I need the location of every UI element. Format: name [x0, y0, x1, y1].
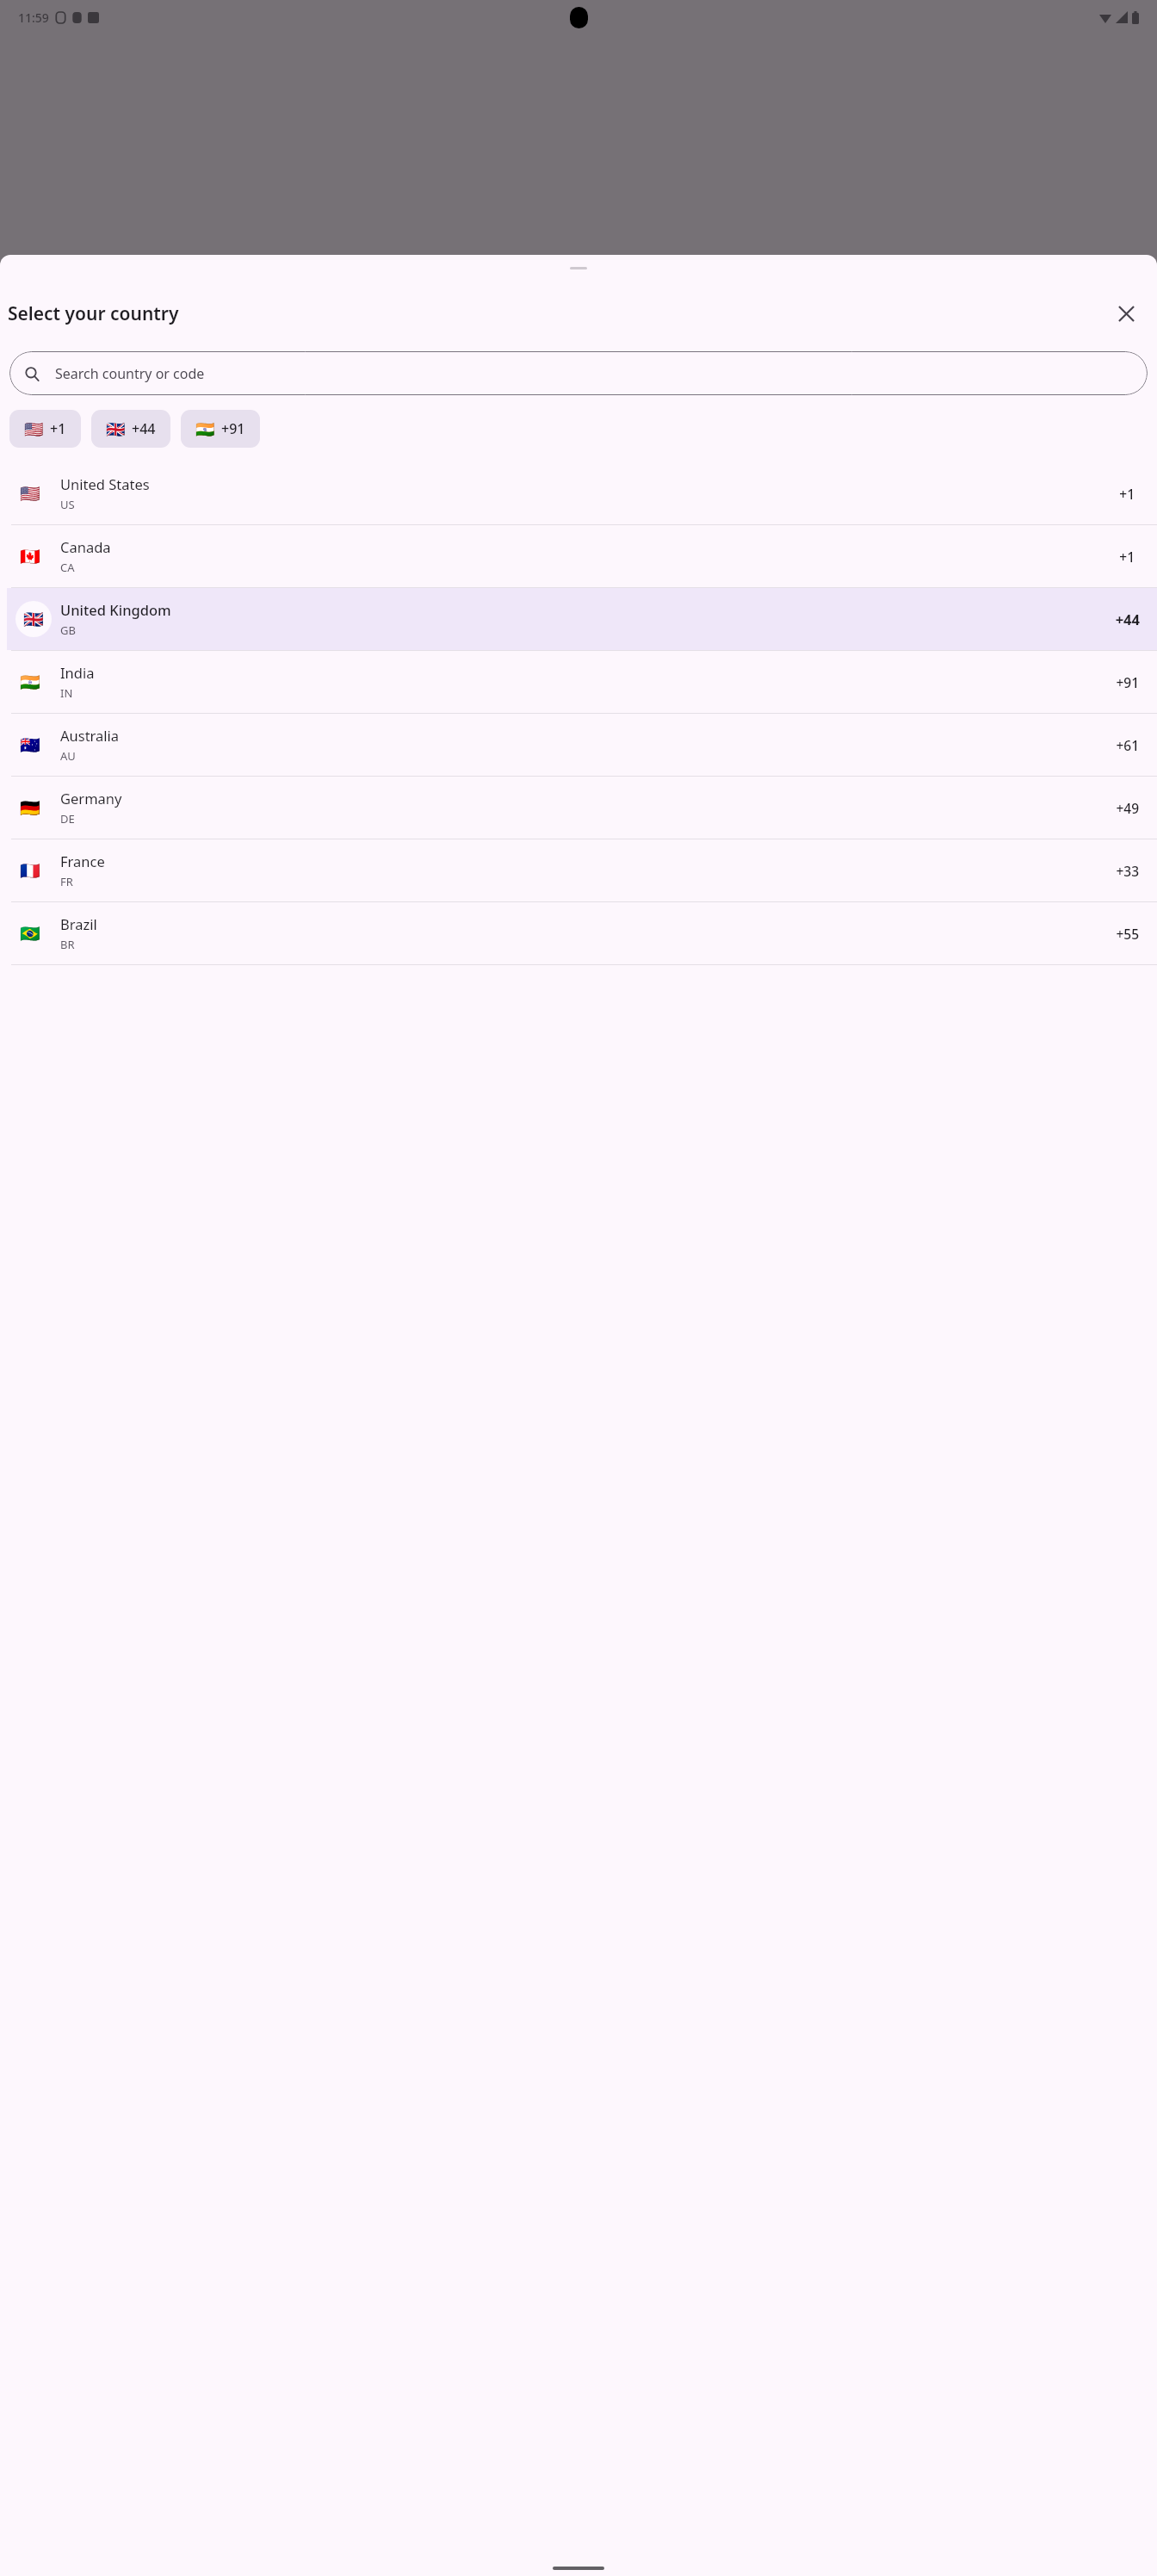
button[interactable]: 🇺🇸 [9, 410, 81, 448]
staticText: United Kingdom [60, 600, 171, 619]
staticText: 🇮🇳 [20, 672, 40, 691]
staticText: India [60, 663, 95, 682]
staticText: +1 [50, 419, 66, 438]
staticText: Search country or code [55, 364, 205, 383]
staticText: +61 [1116, 736, 1139, 754]
staticText: 🇧🇷 [20, 924, 40, 943]
staticText: +1 [1119, 485, 1135, 503]
staticText: 🇬🇧 [23, 610, 44, 629]
staticText: 🇺🇸 [24, 420, 44, 438]
staticText: 🇫🇷 [20, 861, 40, 880]
staticText: IN [60, 685, 73, 701]
button[interactable]: 🇫🇷 [0, 839, 1157, 901]
staticText: +44 [1115, 610, 1140, 629]
button[interactable]: 🇨🇦 [0, 525, 1157, 587]
staticText: United States [60, 474, 150, 493]
staticText: Select your country [8, 301, 179, 326]
button[interactable]: 🇧🇷 [0, 902, 1157, 964]
staticText: Brazil [60, 914, 97, 933]
staticText: +49 [1116, 799, 1139, 817]
button[interactable]: Close [1105, 293, 1147, 334]
staticText: +33 [1116, 862, 1139, 880]
staticText: 🇩🇪 [20, 798, 40, 817]
button[interactable]: 🇮🇳 [0, 651, 1157, 713]
button[interactable]: Search country or code [9, 351, 1148, 395]
staticText: 🇬🇧 [106, 420, 126, 438]
staticText: Canada [60, 537, 111, 556]
staticText: 🇺🇸 [20, 484, 40, 503]
staticText: +91 [221, 419, 245, 438]
staticText: France [60, 851, 105, 870]
staticText: 11:59 [18, 9, 49, 26]
staticText: FR [60, 874, 73, 889]
button[interactable]: 🇦🇺 [0, 714, 1157, 776]
staticText: +55 [1116, 925, 1139, 943]
staticText: AU [60, 748, 76, 764]
button[interactable]: 🇩🇪 [0, 777, 1157, 839]
staticText: US [60, 497, 75, 512]
staticText: DE [60, 811, 75, 827]
staticText: BR [60, 937, 75, 952]
staticText: +91 [1116, 673, 1139, 691]
button[interactable]: 🇮🇳 [181, 410, 260, 448]
button[interactable]: 🇺🇸 [0, 462, 1157, 524]
staticText: +1 [1119, 548, 1135, 566]
staticText: Germany [60, 789, 122, 808]
staticText: 🇨🇦 [20, 547, 40, 566]
staticText: Australia [60, 726, 120, 745]
staticText: GB [60, 622, 76, 638]
staticText: 🇮🇳 [195, 420, 215, 438]
button[interactable]: 🇬🇧 [7, 588, 1157, 650]
staticText: +44 [132, 419, 156, 438]
staticText: 🇦🇺 [20, 735, 40, 754]
button[interactable]: 🇬🇧 [91, 410, 170, 448]
staticText: CA [60, 560, 75, 575]
